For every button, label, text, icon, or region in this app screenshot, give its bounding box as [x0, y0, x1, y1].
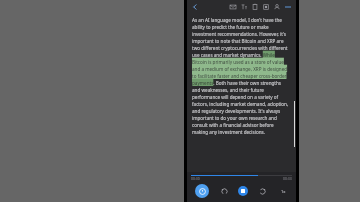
- staticText: 00:33: [283, 176, 292, 181]
- button[interactable]: Mail: [227, 1, 238, 12]
- button[interactable]: Back: [190, 2, 200, 12]
- button[interactable]: 1x: [277, 186, 289, 196]
- button[interactable]: Rewind 10 seconds: [218, 185, 230, 197]
- button[interactable]: Pause: [238, 186, 248, 196]
- button[interactable]: Seek bar: [191, 174, 292, 176]
- button[interactable]: More options: [282, 1, 293, 12]
- button[interactable]: Play: [195, 184, 209, 198]
- button[interactable]: Forward 10 seconds: [256, 185, 268, 197]
- staticText: As an AI language model, I don't have th…: [192, 17, 290, 135]
- staticText: 1x: [281, 189, 286, 194]
- staticText: 00:30: [191, 176, 200, 181]
- button[interactable]: Account: [271, 1, 282, 12]
- button[interactable]: Copy: [249, 1, 260, 12]
- button[interactable]: Text size: [238, 1, 249, 12]
- button[interactable]: Bookmark: [260, 1, 271, 12]
